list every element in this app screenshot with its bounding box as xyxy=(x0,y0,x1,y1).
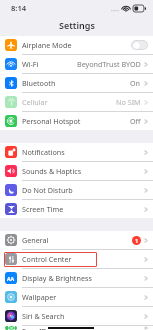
button[interactable]: Siri & Search xyxy=(0,307,153,325)
button[interactable]: Airplane Mode toggle, off xyxy=(131,40,148,50)
staticText: AA xyxy=(7,275,15,282)
staticText: Personal Hotspot xyxy=(22,116,81,126)
button[interactable]: Airplane Mode xyxy=(0,36,153,54)
staticText: 8:14 xyxy=(11,3,27,13)
staticText: Face ID xyxy=(22,326,47,330)
staticText: No SIM xyxy=(116,97,141,107)
staticText: Settings xyxy=(59,19,95,31)
button[interactable]: Face ID xyxy=(0,326,153,330)
button[interactable]: Cellular xyxy=(0,93,153,111)
staticText: General xyxy=(22,235,49,245)
staticText: Wallpaper xyxy=(22,292,57,302)
button[interactable]: Control Center xyxy=(0,250,153,268)
button[interactable]: Do Not Disturb xyxy=(0,181,153,199)
button[interactable]: Wallpaper xyxy=(0,288,153,306)
staticText: Screen Time xyxy=(22,204,64,214)
staticText: Display & Brightness xyxy=(22,273,92,283)
staticText: Wi-Fi xyxy=(22,59,39,69)
staticText: Off xyxy=(130,116,141,126)
button[interactable]: AA xyxy=(0,269,153,287)
button[interactable]: Notifications xyxy=(0,143,153,161)
button[interactable]: Sounds & Haptics xyxy=(0,162,153,180)
staticText: Siri & Search xyxy=(22,311,65,321)
button[interactable]: Personal Hotspot xyxy=(0,112,153,130)
button[interactable]: Wi-Fi xyxy=(0,55,153,73)
button[interactable]: Screen Time xyxy=(0,200,153,218)
staticText: 1 xyxy=(135,237,139,245)
button[interactable]: General xyxy=(0,231,153,249)
staticText: Airplane Mode xyxy=(22,40,72,50)
staticText: On xyxy=(130,78,141,88)
staticText: Cellular xyxy=(22,97,48,107)
staticText: Bluetooth xyxy=(22,78,56,88)
staticText: Control Center xyxy=(22,254,72,264)
button[interactable]: Bluetooth xyxy=(0,74,153,92)
staticText: Do Not Disturb xyxy=(22,185,73,195)
staticText: Sounds & Haptics xyxy=(22,166,82,176)
staticText: Notifications xyxy=(22,147,65,157)
staticText: BeyondTrust BYOD xyxy=(77,59,141,69)
